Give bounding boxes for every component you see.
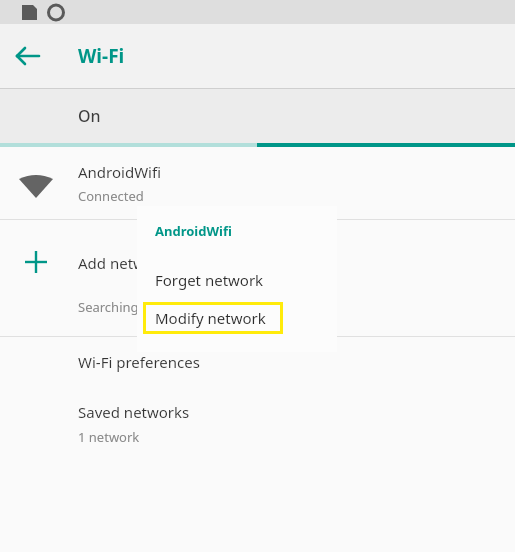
staticText: Searching… <box>78 298 149 316</box>
button[interactable]: Modify network <box>143 302 283 334</box>
staticText: Add network <box>78 253 169 273</box>
button[interactable]: Saved networks <box>0 386 515 454</box>
staticText: 1 network <box>78 428 140 446</box>
staticText: Saved networks <box>78 402 190 422</box>
staticText: On <box>78 105 101 127</box>
staticText: Wi-Fi <box>78 43 125 69</box>
button[interactable]: On <box>0 89 515 143</box>
button[interactable]: Forget network <box>137 258 337 302</box>
button[interactable]: Add network <box>0 220 515 336</box>
staticText: Modify network <box>155 308 266 328</box>
button[interactable]: Back <box>8 36 48 76</box>
staticText: Forget network <box>155 270 264 290</box>
staticText: Connected <box>78 187 144 205</box>
button[interactable]: AndroidWifi <box>0 147 515 219</box>
button[interactable]: Wi-Fi preferences <box>0 337 515 386</box>
staticText: AndroidWifi <box>78 162 161 182</box>
staticText: AndroidWifi <box>155 222 232 240</box>
staticText: Wi-Fi preferences <box>78 352 200 372</box>
